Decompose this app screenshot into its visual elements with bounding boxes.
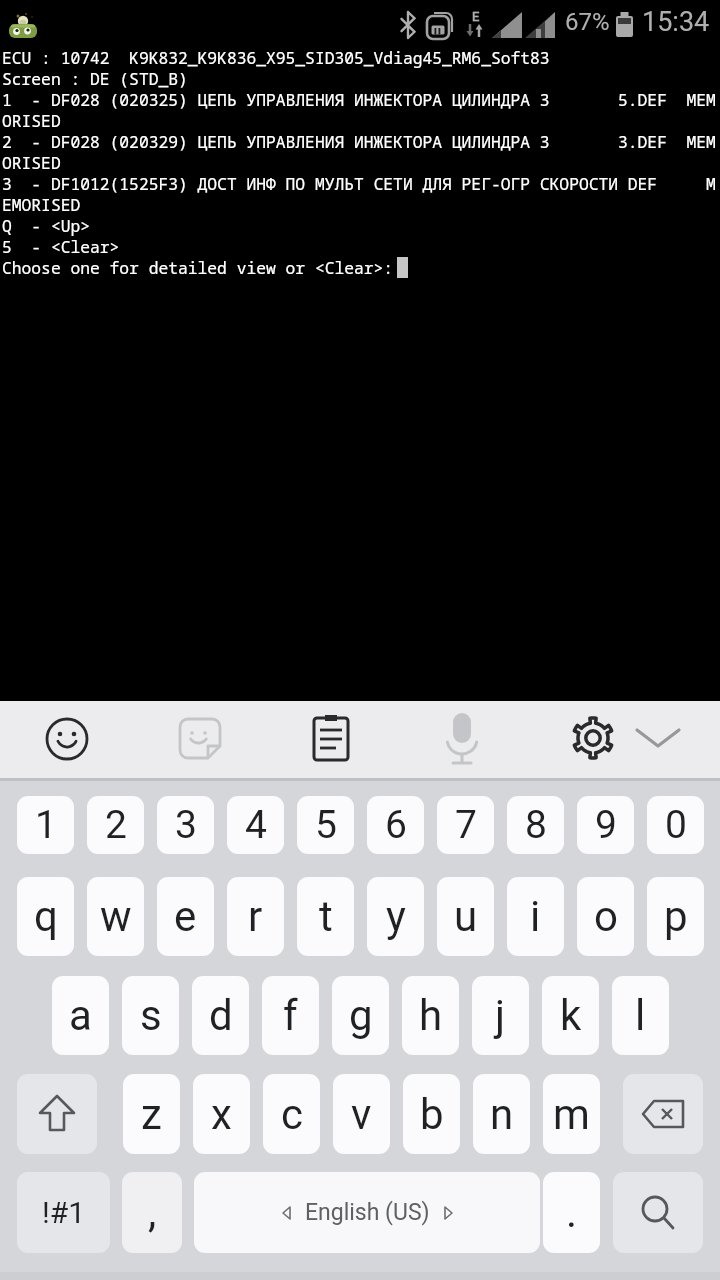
button[interactable]: j (472, 976, 529, 1055)
staticText: b (420, 1090, 444, 1139)
staticText: 8 (525, 802, 547, 848)
staticText: k (560, 991, 582, 1040)
staticText: ECU : 10742 K9K832_K9K836_X95_SID305_Vdi… (2, 47, 550, 68)
button[interactable]: 9 (577, 796, 634, 854)
staticText: 2 - DF028 (020329) ЦЕПЬ УПРАВЛЕНИЯ ИНЖЕК… (2, 131, 716, 152)
button[interactable] (568, 714, 618, 764)
button[interactable]: k (542, 976, 599, 1055)
staticText: 1 (35, 802, 57, 848)
button[interactable]: English (US) (194, 1172, 540, 1253)
staticText: p (664, 892, 688, 941)
staticText: q (34, 892, 58, 941)
button[interactable]: 2 (87, 796, 144, 854)
button[interactable]: p (647, 877, 704, 956)
button[interactable]: b (403, 1074, 460, 1154)
staticText: 5 - <Clear> (2, 236, 120, 257)
button[interactable]: o (577, 877, 634, 956)
button[interactable] (613, 1172, 703, 1253)
staticText: l (635, 991, 646, 1040)
button[interactable]: z (123, 1074, 180, 1154)
staticText: 1 - DF028 (020325) ЦЕПЬ УПРАВЛЕНИЯ ИНЖЕК… (2, 89, 716, 110)
button[interactable]: 7 (437, 796, 494, 854)
button[interactable] (440, 711, 484, 767)
staticText: ORISED (2, 110, 61, 131)
staticText: E (472, 9, 480, 24)
staticText: English (US) (305, 1199, 430, 1226)
button[interactable]: 5 (297, 796, 354, 854)
staticText: ORISED (2, 152, 61, 173)
button[interactable] (630, 716, 686, 762)
button[interactable]: 3 (157, 796, 214, 854)
button[interactable]: u (437, 877, 494, 956)
button[interactable]: t (297, 877, 354, 956)
button[interactable] (623, 1074, 703, 1154)
button[interactable]: w (87, 877, 144, 956)
button[interactable]: 4 (227, 796, 284, 854)
button[interactable]: !#1 (17, 1172, 110, 1253)
staticText: z (141, 1090, 162, 1139)
button[interactable]: 1 (17, 796, 74, 854)
button[interactable]: d (192, 976, 249, 1055)
staticText: i (530, 892, 541, 941)
button[interactable]: h (402, 976, 459, 1055)
staticText: . (566, 1188, 578, 1237)
button[interactable]: g (332, 976, 389, 1055)
staticText: f (283, 991, 298, 1040)
staticText: v (351, 1090, 372, 1139)
button[interactable]: y (367, 877, 424, 956)
button[interactable]: l (612, 976, 669, 1055)
staticText: , (148, 1188, 157, 1237)
staticText: o (594, 892, 618, 941)
staticText: 5 (315, 802, 337, 848)
staticText: n (490, 1090, 514, 1139)
staticText: 6 (385, 802, 407, 848)
staticText: s (140, 991, 162, 1040)
staticText: 4 (245, 802, 267, 848)
staticText: Choose one for detailed view or <Clear>: (2, 257, 394, 278)
staticText: g (349, 991, 373, 1040)
staticText: 3 - DF1012(1525F3) ДОСТ ИНФ ПО МУЛЬТ СЕТ… (2, 173, 716, 194)
button[interactable]: e (157, 877, 214, 956)
button[interactable] (17, 1074, 97, 1154)
staticText: w (100, 892, 132, 941)
staticText: 3 (175, 802, 197, 848)
staticText: 2 (105, 802, 127, 848)
staticText: a (69, 991, 92, 1040)
staticText: e (174, 892, 197, 941)
button[interactable] (175, 714, 225, 764)
staticText: 15:34 (642, 6, 710, 38)
staticText: 7 (455, 802, 477, 848)
button[interactable]: 6 (367, 796, 424, 854)
button[interactable]: 8 (507, 796, 564, 854)
staticText: c (281, 1090, 303, 1139)
button[interactable]: , (122, 1172, 182, 1253)
button[interactable]: m (543, 1074, 600, 1154)
staticText: t (319, 892, 333, 941)
button[interactable]: n (473, 1074, 530, 1154)
button[interactable]: r (227, 877, 284, 956)
button[interactable]: 0 (647, 796, 704, 854)
staticText: j (495, 991, 506, 1040)
button[interactable]: . (543, 1172, 600, 1253)
staticText: !#1 (42, 1195, 86, 1230)
button[interactable] (306, 714, 356, 764)
staticText: 67% (565, 8, 610, 36)
staticText: d (209, 991, 233, 1040)
staticText: 0 (665, 802, 687, 848)
button[interactable]: i (507, 877, 564, 956)
staticText: Screen : DE (STD_B) (2, 68, 188, 89)
staticText: r (248, 892, 263, 941)
button[interactable] (42, 714, 92, 764)
staticText: u (454, 892, 478, 941)
staticText: Q - <Up> (2, 215, 91, 236)
button[interactable]: f (262, 976, 319, 1055)
button[interactable]: v (333, 1074, 390, 1154)
staticText: x (211, 1090, 232, 1139)
button[interactable]: x (193, 1074, 250, 1154)
staticText: EMORISED (2, 194, 81, 215)
button[interactable]: q (17, 877, 74, 956)
button[interactable]: s (122, 976, 179, 1055)
button[interactable]: a (52, 976, 109, 1055)
button[interactable]: c (263, 1074, 320, 1154)
staticText: y (386, 892, 406, 941)
